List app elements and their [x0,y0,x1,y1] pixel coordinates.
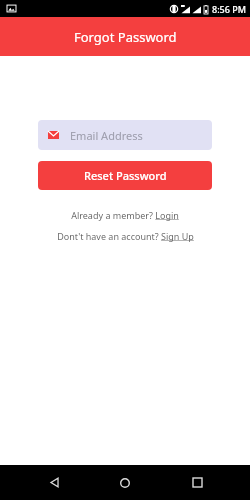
button[interactable]: Email Address [38,120,212,150]
staticText: Email Address [70,128,143,143]
staticText: Already a member? Login [71,209,179,221]
button[interactable]: Reset Password [38,161,212,190]
staticText: 8:56 PM [212,3,246,15]
button[interactable]: Home [107,465,143,500]
button[interactable]: Recent apps [179,465,215,500]
button[interactable]: Back [36,465,72,500]
button[interactable]: Dont't have an account? Sign Up [0,230,250,242]
button[interactable]: Already a member? Login [0,209,250,221]
staticText: Reset Password [84,168,167,183]
staticText: Dont't have an account? Sign Up [57,230,194,242]
staticText: Forgot Password [74,28,177,46]
